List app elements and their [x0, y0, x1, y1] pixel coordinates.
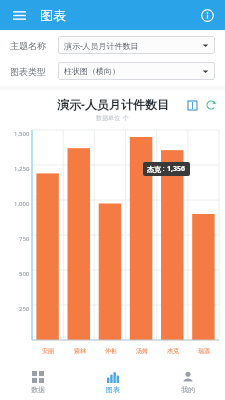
- staticText: 柱状图（横向）: [64, 66, 202, 76]
- staticText: 汤姆: [136, 347, 148, 355]
- staticText: :: [161, 164, 167, 174]
- staticText: 杰克: [167, 347, 179, 355]
- button[interactable]: 图表: [75, 364, 150, 400]
- button[interactable]: 我的: [150, 364, 225, 400]
- staticText: 图表类型: [10, 66, 46, 77]
- staticText: 仲彬: [105, 347, 117, 355]
- button[interactable]: 演示-人员月计件数目: [58, 36, 215, 54]
- button[interactable]: Refresh: [203, 97, 219, 113]
- staticText: 瑞源: [198, 347, 210, 355]
- button[interactable]: 数据: [0, 364, 75, 400]
- button[interactable]: 柱状图（横向）: [58, 62, 215, 80]
- staticText: 杰克: [147, 165, 161, 174]
- staticText: 500: [19, 270, 30, 278]
- staticText: 主题名称: [10, 40, 46, 51]
- staticText: 750: [19, 235, 30, 243]
- staticText: 250: [19, 305, 30, 313]
- staticText: 数据: [31, 385, 45, 394]
- staticText: 安丽: [42, 347, 54, 355]
- staticText: 数据单位 个: [96, 114, 130, 122]
- staticText: 1,500: [14, 130, 30, 138]
- staticText: 图表: [106, 385, 120, 394]
- staticText: 紫林: [74, 347, 86, 355]
- staticText: 我的: [181, 385, 195, 394]
- button[interactable]: Info: [197, 5, 217, 25]
- staticText: 1,356: [167, 164, 186, 174]
- staticText: 演示-人员月计件数目: [64, 40, 202, 51]
- staticText: 1,250: [14, 165, 30, 173]
- staticText: 1,000: [14, 200, 30, 208]
- button[interactable]: Menu: [8, 4, 30, 26]
- staticText: 图表: [40, 7, 66, 23]
- staticText: 演示-人员月计件数目: [57, 96, 169, 112]
- button[interactable]: Table view: [184, 97, 200, 113]
